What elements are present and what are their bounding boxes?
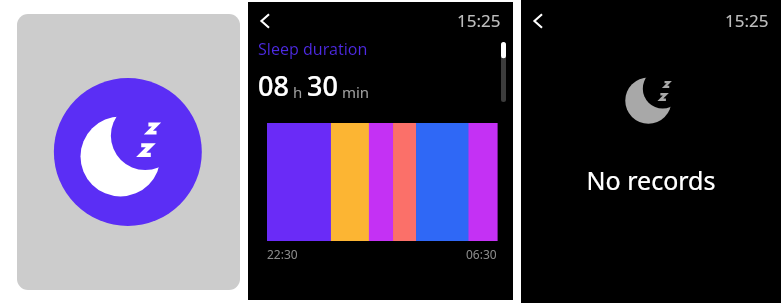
staticText: 22:30 — [267, 246, 298, 262]
button[interactable]: Back — [250, 6, 279, 35]
button[interactable]: Back — [523, 6, 552, 35]
staticText: 15:25 — [457, 9, 501, 32]
staticText: 30 — [307, 67, 338, 104]
staticText: 08 — [258, 67, 289, 104]
staticText: 06:30 — [466, 246, 497, 262]
button[interactable]: Sleep stages chart — [267, 123, 497, 241]
button[interactable]: Sleep app icon — [17, 14, 240, 290]
staticText: min — [338, 82, 370, 102]
button[interactable]: Sleep duration — [258, 38, 368, 60]
button[interactable]: No records — [521, 163, 781, 197]
staticText: h — [289, 82, 307, 102]
staticText: 15:25 — [725, 9, 769, 32]
